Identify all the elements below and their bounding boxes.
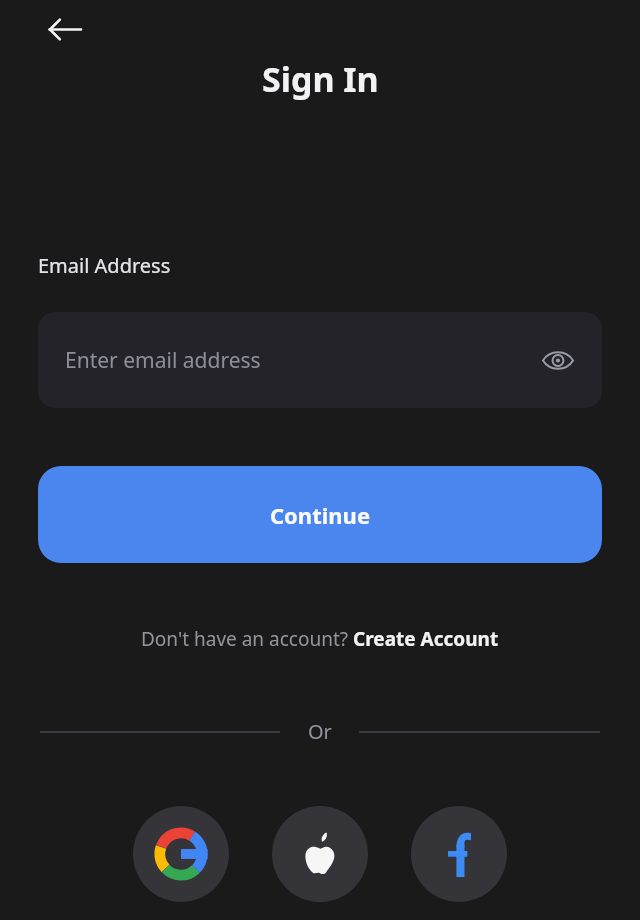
staticText: Sign In xyxy=(262,56,379,102)
button[interactable]: Back xyxy=(42,6,88,52)
staticText: Email Address xyxy=(38,252,171,279)
button[interactable]: Continue xyxy=(38,466,602,563)
button[interactable]: Sign in with Apple xyxy=(272,806,368,902)
button[interactable]: Sign in with Google xyxy=(133,806,229,902)
button[interactable]: Sign in with Facebook xyxy=(411,806,507,902)
staticText: Create Account xyxy=(353,626,499,652)
staticText: Don't have an account? xyxy=(141,626,353,652)
button[interactable]: Show text xyxy=(538,340,578,380)
button[interactable]: Create Account xyxy=(353,626,499,652)
button[interactable]: Enter email address xyxy=(38,312,602,408)
staticText: Or xyxy=(308,718,332,745)
staticText: Enter email address xyxy=(65,346,538,375)
staticText: Continue xyxy=(270,500,371,530)
